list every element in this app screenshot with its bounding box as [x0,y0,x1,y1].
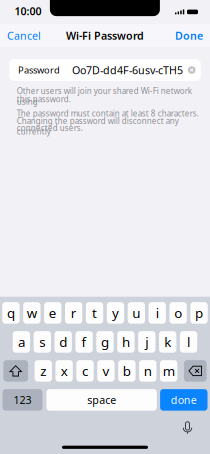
button[interactable]: f [75,331,93,353]
staticText: Other users will join your shared Wi-Fi … [17,86,192,107]
staticText: h [122,333,130,351]
button[interactable]: m [160,360,177,382]
staticText: 123 [13,393,31,407]
button[interactable]: v [97,360,115,382]
staticText: i [156,304,159,322]
staticText: The password must contain at least 8 cha… [17,108,199,119]
button[interactable]: p [190,302,208,324]
button[interactable]: x [55,360,73,382]
button[interactable]: e [44,302,61,324]
button[interactable]: Shift [3,360,28,382]
staticText: e [49,304,57,322]
staticText: m [163,362,175,380]
staticText: Oo7D-dd4F-6usv-cTH5 [72,63,183,77]
staticText: z [40,362,46,380]
button[interactable]: y [107,302,124,324]
button[interactable]: b [118,360,135,382]
staticText: y [112,304,119,322]
staticText: d [59,333,67,351]
button[interactable]: Done [168,24,210,46]
staticText: Changing the password will disconnect an… [17,115,179,137]
button[interactable]: r [65,302,82,324]
staticText: g [101,333,109,351]
button[interactable]: Delete [184,360,207,382]
button[interactable]: Clear text [185,60,199,80]
staticText: l [187,333,190,351]
button[interactable]: w [23,302,40,324]
button[interactable]: t [86,302,103,324]
button[interactable]: z [35,360,52,382]
button[interactable]: u [128,302,145,324]
staticText: b [123,362,131,380]
button[interactable]: l [180,331,197,353]
button[interactable]: n [139,360,156,382]
staticText: Wi-Fi Password [66,28,144,43]
button[interactable]: s [34,331,51,353]
staticText: r [71,304,77,322]
staticText: f [82,333,87,351]
button[interactable]: h [117,331,134,353]
staticText: Cancel [7,28,41,43]
staticText: Done [175,28,203,43]
button[interactable]: a [13,331,30,353]
staticText: t [92,304,97,322]
button[interactable]: space [46,389,157,411]
staticText: c [82,362,88,380]
button[interactable]: c [76,360,94,382]
staticText: n [144,362,152,380]
staticText: this password. [17,94,71,104]
button[interactable]: g [96,331,114,353]
staticText: o [174,304,182,322]
staticText: done [171,393,197,407]
staticText: a [18,333,25,351]
staticText: w [27,304,37,322]
button[interactable]: k [159,331,176,353]
staticText: j [145,333,148,351]
staticText: q [7,304,15,322]
staticText: x [61,362,68,380]
staticText: Password [18,64,60,76]
staticText: space [87,393,116,407]
button[interactable]: i [149,302,166,324]
button[interactable]: 123 [2,389,42,411]
button[interactable]: Dictation [178,419,196,437]
staticText: 10:00 [14,4,41,18]
staticText: connected users. [17,123,83,133]
button[interactable]: q [2,302,20,324]
staticText: u [132,304,140,322]
staticText: p [195,304,203,322]
staticText: s [39,333,45,351]
staticText: v [102,362,109,380]
staticText: k [164,333,171,351]
button[interactable]: d [54,331,72,353]
button[interactable]: j [138,331,155,353]
button[interactable]: o [169,302,187,324]
button[interactable]: Cancel [0,24,48,46]
button[interactable]: done [160,389,207,411]
